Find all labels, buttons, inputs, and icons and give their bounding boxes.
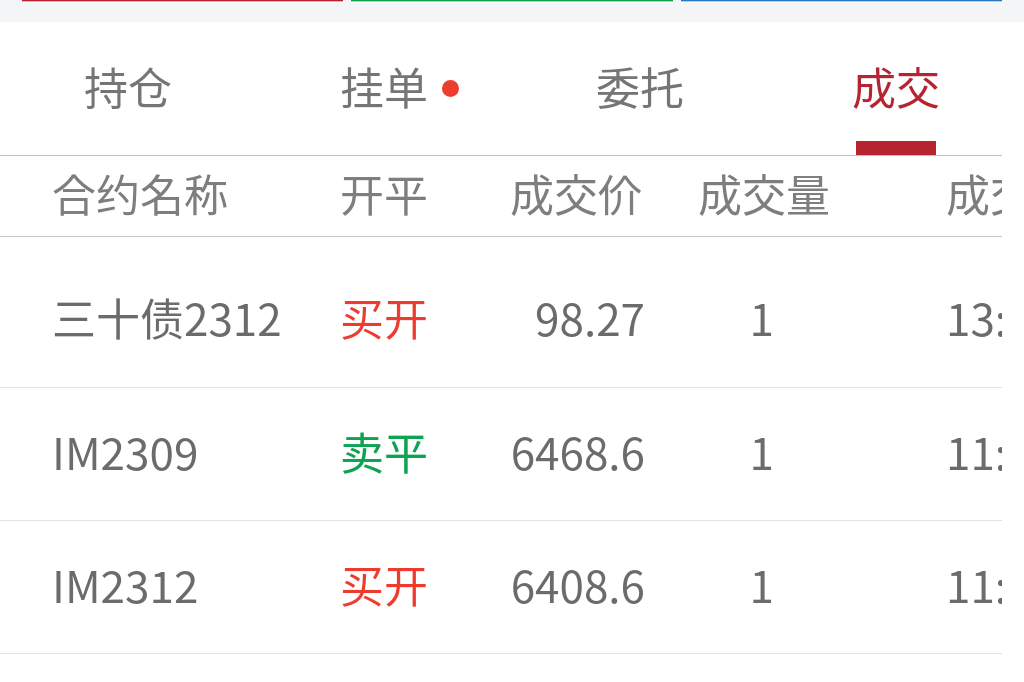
staticText: 成交时间: [946, 161, 1002, 225]
staticText: 买开: [340, 285, 428, 349]
staticText: 持仓: [84, 54, 172, 118]
staticText: IM2309: [52, 419, 199, 483]
other: Unread pending orders: [442, 80, 459, 97]
staticText: 6468.6: [0, 419, 645, 483]
button[interactable]: 持仓: [0, 22, 256, 155]
button[interactable]: 成交: [768, 22, 1024, 155]
staticText: 卖平: [340, 419, 428, 483]
staticText: 开平: [340, 161, 428, 225]
staticText: 成交: [852, 54, 940, 118]
staticText: 成交价: [510, 161, 642, 225]
staticText: 买开: [340, 552, 428, 616]
staticText: 挂单: [340, 54, 428, 118]
staticText: 1: [0, 285, 774, 349]
staticText: 11:: [946, 552, 1002, 616]
staticText: 1: [0, 552, 774, 616]
staticText: IM2312: [52, 552, 199, 616]
staticText: 98.27: [0, 285, 645, 349]
staticText: 13:: [946, 285, 1002, 349]
button[interactable]: 挂单: [256, 22, 512, 155]
button[interactable]: IM2309: [0, 388, 1002, 520]
staticText: 三十债2312: [52, 285, 282, 349]
button[interactable]: 委托: [512, 22, 768, 155]
staticText: 成交量: [698, 161, 830, 225]
staticText: 委托: [596, 54, 684, 118]
button[interactable]: 三十债2312: [0, 237, 1002, 387]
button[interactable]: IM2312: [0, 521, 1002, 653]
staticText: 11:: [946, 419, 1002, 483]
staticText: 合约名称: [52, 161, 228, 225]
staticText: 6408.6: [0, 552, 645, 616]
staticText: 1: [0, 419, 774, 483]
